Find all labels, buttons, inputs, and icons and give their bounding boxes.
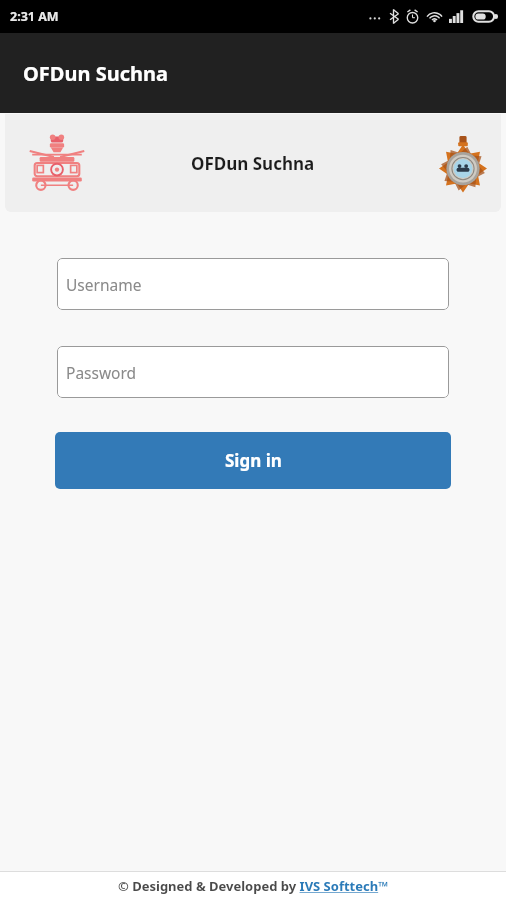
staticText: Sign in xyxy=(225,449,282,472)
button[interactable]: Username xyxy=(57,258,449,310)
staticText: OFDun Suchna xyxy=(23,60,168,87)
staticText: Username xyxy=(66,274,142,295)
staticText: Password xyxy=(66,362,137,383)
button[interactable]: Sign in xyxy=(55,432,451,489)
staticText: OFDun Suchna xyxy=(191,152,315,175)
button[interactable]: Password xyxy=(57,346,449,398)
staticText: 2:31 AM xyxy=(10,8,59,25)
button[interactable]: © Designed & Developed by IVS Softtech™ xyxy=(118,877,389,895)
